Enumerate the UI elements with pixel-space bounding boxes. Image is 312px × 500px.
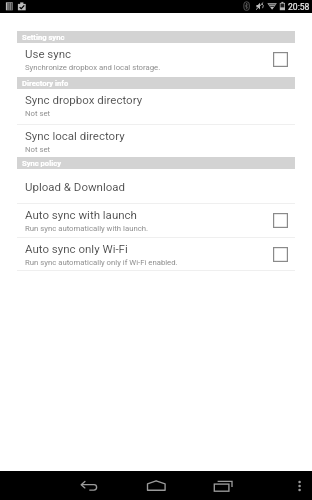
staticText: Directory info xyxy=(22,79,69,88)
staticText: Run sync automatically only if Wi-Fi ena… xyxy=(25,258,178,267)
staticText: Synchronize dropbox and local storage. xyxy=(25,63,161,72)
staticText: Not set xyxy=(25,145,51,154)
button[interactable]: Use sync xyxy=(0,43,312,77)
staticText: Sync dropbox directory xyxy=(25,93,143,106)
button[interactable]: Auto sync with launch xyxy=(0,204,312,237)
staticText: Use sync xyxy=(25,47,72,60)
button[interactable]: Auto sync only Wi-Fi xyxy=(0,238,312,270)
button[interactable]: Sync local directory xyxy=(0,125,312,157)
button[interactable]: Recent apps xyxy=(204,471,244,500)
staticText: Sync local directory xyxy=(25,129,125,142)
staticText: 20:58 xyxy=(288,2,310,12)
button[interactable]: Back xyxy=(70,471,110,500)
button[interactable]: More options xyxy=(286,471,312,500)
staticText: Run sync automatically with launch. xyxy=(25,224,149,233)
staticText: Auto sync with launch xyxy=(25,208,137,221)
button[interactable]: Upload & Download xyxy=(0,169,312,203)
staticText: Upload & Download xyxy=(25,180,126,193)
staticText: Auto sync only Wi-Fi xyxy=(25,242,128,255)
button[interactable]: Sync dropbox directory xyxy=(0,89,312,124)
staticText: Setting sync xyxy=(22,33,65,42)
button[interactable]: Home xyxy=(136,471,176,500)
staticText: Sync policy xyxy=(22,159,61,168)
staticText: Not set xyxy=(25,109,51,118)
